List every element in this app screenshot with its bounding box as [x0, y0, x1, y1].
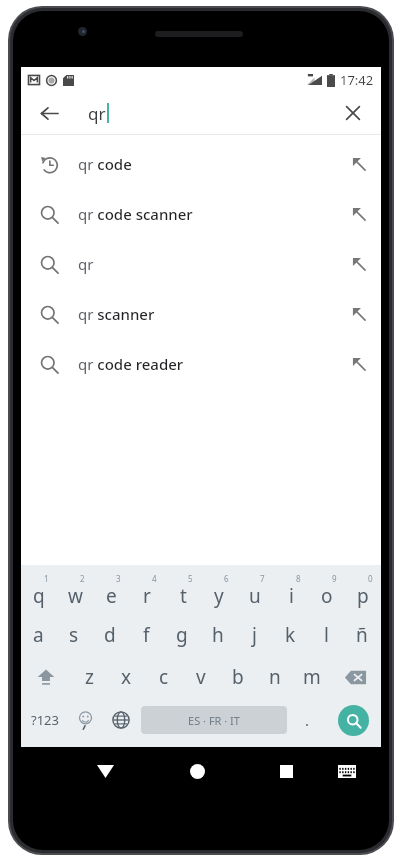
button[interactable]: qr: [88, 92, 109, 134]
staticText: e: [106, 583, 117, 609]
button[interactable]: e: [93, 572, 129, 614]
button[interactable]: Back: [33, 97, 65, 129]
button[interactable]: n: [256, 656, 293, 698]
button[interactable]: d: [92, 614, 128, 656]
staticText: qr code reader: [78, 354, 336, 374]
staticText: r: [143, 583, 151, 609]
button[interactable]: Change language: [103, 698, 138, 742]
button[interactable]: Emoji: [68, 698, 103, 742]
button[interactable]: qr code scanner: [21, 189, 381, 239]
staticText: 7: [260, 573, 265, 584]
staticText: t: [180, 583, 187, 609]
button[interactable]: g: [164, 614, 200, 656]
button[interactable]: a: [21, 614, 56, 656]
button[interactable]: v: [182, 656, 219, 698]
button[interactable]: f: [128, 614, 164, 656]
staticText: u: [249, 583, 261, 609]
button[interactable]: k: [272, 614, 308, 656]
button[interactable]: z: [71, 656, 108, 698]
button[interactable]: c: [145, 656, 182, 698]
staticText: b: [232, 664, 244, 690]
button[interactable]: i: [273, 572, 309, 614]
staticText: .: [305, 710, 310, 730]
button[interactable]: Search: [338, 705, 369, 736]
button[interactable]: s: [56, 614, 92, 656]
staticText: qr scanner: [78, 304, 336, 324]
staticText: h: [212, 622, 224, 648]
button[interactable]: Back: [83, 749, 127, 793]
button[interactable]: Home: [175, 749, 219, 793]
staticText: p: [357, 583, 369, 609]
button[interactable]: h: [200, 614, 236, 656]
staticText: 3: [116, 573, 121, 584]
button[interactable]: .: [290, 698, 325, 742]
button[interactable]: u: [237, 572, 273, 614]
staticText: qr: [78, 254, 336, 274]
button[interactable]: t: [165, 572, 201, 614]
staticText: qr code scanner: [78, 204, 336, 224]
button[interactable]: qr: [21, 239, 381, 289]
button[interactable]: qr code: [21, 139, 381, 189]
button[interactable]: Insert suggestion: [336, 239, 381, 289]
staticText: k: [285, 622, 296, 648]
staticText: 1: [44, 573, 49, 584]
staticText: ñ: [356, 622, 368, 648]
staticText: 6: [224, 573, 229, 584]
button[interactable]: Shift: [21, 656, 71, 698]
staticText: f: [143, 622, 150, 648]
button[interactable]: p: [345, 572, 381, 614]
staticText: o: [321, 583, 333, 609]
button[interactable]: ES · FR · IT: [141, 706, 287, 734]
staticText: i: [289, 583, 294, 609]
staticText: qr code: [78, 154, 336, 174]
staticText: s: [69, 622, 79, 648]
staticText: d: [104, 622, 116, 648]
staticText: ?123: [31, 711, 59, 729]
staticText: a: [33, 622, 44, 648]
staticText: l: [324, 622, 329, 648]
button[interactable]: r: [129, 572, 165, 614]
button[interactable]: Insert suggestion: [336, 189, 381, 239]
staticText: v: [196, 664, 206, 690]
staticText: z: [85, 664, 94, 690]
button[interactable]: l: [308, 614, 344, 656]
staticText: 17:42: [340, 71, 374, 89]
staticText: y: [214, 583, 224, 609]
staticText: 4: [152, 573, 157, 584]
button[interactable]: ñ: [344, 614, 380, 656]
button[interactable]: j: [236, 614, 272, 656]
staticText: q: [33, 583, 45, 609]
button[interactable]: qr code reader: [21, 339, 381, 389]
staticText: x: [121, 664, 132, 690]
button[interactable]: ?123: [21, 698, 68, 742]
button[interactable]: x: [108, 656, 145, 698]
staticText: qr: [88, 102, 106, 125]
staticText: j: [252, 622, 257, 648]
button[interactable]: Recent apps: [264, 749, 308, 793]
button[interactable]: Clear search: [337, 97, 369, 129]
staticText: n: [269, 664, 281, 690]
button[interactable]: Insert suggestion: [336, 139, 381, 189]
button[interactable]: Backspace: [330, 656, 381, 698]
staticText: g: [176, 622, 188, 648]
button[interactable]: Insert suggestion: [336, 289, 381, 339]
button[interactable]: b: [219, 656, 256, 698]
staticText: 8: [296, 573, 301, 584]
staticText: w: [68, 583, 83, 609]
button[interactable]: q: [21, 572, 57, 614]
button[interactable]: w: [57, 572, 93, 614]
staticText: 9: [332, 573, 337, 584]
button[interactable]: m: [293, 656, 330, 698]
staticText: c: [159, 664, 169, 690]
button[interactable]: Switch keyboard: [327, 751, 367, 791]
staticText: ES · FR · IT: [188, 713, 240, 728]
button[interactable]: Insert suggestion: [336, 339, 381, 389]
button[interactable]: y: [201, 572, 237, 614]
staticText: 2: [80, 573, 85, 584]
staticText: 5: [188, 573, 193, 584]
button[interactable]: qr scanner: [21, 289, 381, 339]
staticText: 0: [368, 573, 373, 584]
button[interactable]: o: [309, 572, 345, 614]
staticText: m: [303, 664, 321, 690]
